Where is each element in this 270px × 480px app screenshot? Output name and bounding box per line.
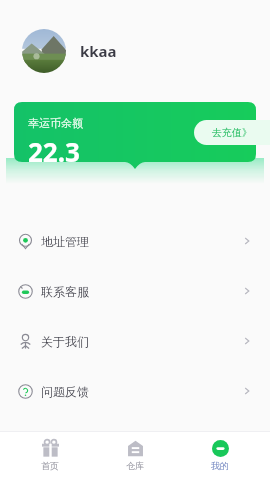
staticText: 幸运币余额 [28, 116, 83, 130]
button[interactable]: About us [0, 316, 270, 366]
other: Contact support [18, 284, 33, 299]
other: About us [18, 334, 33, 349]
staticText: 联系客服 [41, 284, 89, 299]
staticText: 问题反馈 [41, 384, 89, 399]
other: Feedback [18, 384, 33, 399]
button[interactable]: Warehouse [100, 431, 170, 480]
other: Home [42, 440, 59, 457]
staticText: 22.3 [28, 134, 80, 169]
button[interactable]: 去充值》 [194, 120, 270, 145]
button[interactable]: Profile [185, 431, 255, 480]
staticText: 我的 [211, 460, 229, 471]
button[interactable]: Profile photo [0, 0, 270, 102]
staticText: 仓库 [126, 460, 144, 471]
button[interactable]: Home [15, 431, 85, 480]
staticText: 去充值》 [212, 126, 252, 139]
button[interactable]: Feedback [0, 366, 270, 416]
staticText: 首页 [41, 460, 59, 471]
button[interactable]: Profile photo [22, 29, 66, 73]
staticText: kkaa [80, 41, 117, 61]
other: Warehouse [127, 440, 144, 457]
button[interactable]: Address [0, 216, 270, 266]
staticText: 关于我们 [41, 334, 89, 349]
button[interactable]: Contact support [0, 266, 270, 316]
other: Address [18, 234, 33, 249]
staticText: 地址管理 [41, 234, 89, 249]
other: Profile [212, 440, 229, 457]
